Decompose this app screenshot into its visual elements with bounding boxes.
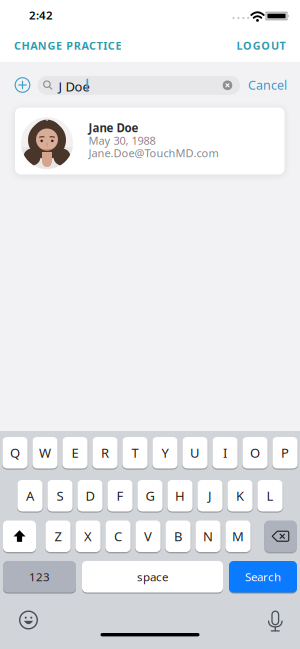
button[interactable]: CHANGE PRACTICE bbox=[14, 38, 121, 53]
button[interactable]: F bbox=[107, 480, 133, 511]
staticText: L bbox=[266, 487, 273, 505]
button[interactable]: G bbox=[137, 480, 163, 511]
staticText: D bbox=[85, 487, 94, 505]
staticText: R bbox=[101, 444, 109, 462]
button[interactable]: N bbox=[195, 520, 221, 552]
staticText: space bbox=[137, 569, 168, 585]
staticText: A bbox=[26, 487, 34, 505]
button[interactable]: Q bbox=[2, 437, 28, 468]
staticText: Cancel bbox=[248, 76, 287, 93]
staticText: N bbox=[203, 527, 213, 545]
staticText: O bbox=[250, 444, 260, 462]
button[interactable]: B bbox=[165, 520, 191, 552]
staticText: M bbox=[232, 527, 244, 545]
button[interactable] bbox=[19, 611, 37, 629]
button[interactable]: L bbox=[257, 480, 283, 511]
button[interactable] bbox=[264, 520, 296, 552]
staticText: Jane.Doe@TouchMD.com bbox=[88, 145, 218, 160]
button[interactable]: 123 bbox=[3, 561, 76, 592]
staticText: E bbox=[71, 444, 78, 462]
button[interactable]: A bbox=[17, 480, 43, 511]
button[interactable]: S bbox=[47, 480, 73, 511]
button[interactable]: space bbox=[82, 561, 223, 592]
staticText: Z bbox=[54, 527, 61, 545]
staticText: CHANGE PRACTICE bbox=[14, 38, 121, 53]
button[interactable]: I bbox=[212, 437, 238, 468]
button[interactable]: U bbox=[182, 437, 208, 468]
staticText: C bbox=[114, 527, 122, 545]
button[interactable]: H bbox=[167, 480, 193, 511]
button[interactable] bbox=[223, 80, 232, 90]
staticText: F bbox=[116, 487, 123, 505]
staticText: W bbox=[39, 444, 51, 462]
button[interactable]: C bbox=[105, 520, 131, 552]
staticText: May 30, 1988 bbox=[88, 133, 155, 148]
button[interactable]: Jane Doe bbox=[15, 107, 284, 174]
button[interactable] bbox=[266, 610, 285, 631]
staticText: T bbox=[131, 444, 138, 462]
button[interactable]: V bbox=[135, 520, 161, 552]
staticText: 2:42 bbox=[29, 7, 53, 23]
button[interactable]: J bbox=[197, 480, 223, 511]
button[interactable]: P bbox=[272, 437, 298, 468]
button[interactable]: Z bbox=[45, 520, 71, 552]
staticText: G bbox=[145, 487, 154, 505]
staticText: U bbox=[190, 444, 200, 462]
button[interactable]: M bbox=[225, 520, 251, 552]
button[interactable]: LOGOUT bbox=[236, 38, 285, 53]
button[interactable]: O bbox=[242, 437, 268, 468]
button[interactable]: Search bbox=[229, 561, 297, 592]
button[interactable]: D bbox=[77, 480, 103, 511]
staticText: H bbox=[175, 487, 185, 505]
button[interactable]: R bbox=[92, 437, 118, 468]
staticText: P bbox=[281, 444, 289, 462]
staticText: J bbox=[208, 487, 212, 505]
staticText: I bbox=[223, 444, 227, 462]
staticText: X bbox=[84, 527, 92, 545]
staticText: V bbox=[144, 527, 152, 545]
button[interactable] bbox=[13, 76, 31, 94]
staticText: LOGOUT bbox=[236, 38, 285, 53]
staticText: Jane Doe bbox=[88, 120, 138, 136]
button[interactable] bbox=[3, 520, 36, 552]
button[interactable]: K bbox=[227, 480, 253, 511]
staticText: S bbox=[56, 487, 63, 505]
staticText: B bbox=[174, 527, 182, 545]
button[interactable]: Cancel bbox=[248, 76, 287, 93]
staticText: 123 bbox=[29, 569, 50, 585]
staticText: Q bbox=[10, 444, 20, 462]
button[interactable]: X bbox=[75, 520, 101, 552]
button[interactable]: T bbox=[122, 437, 148, 468]
staticText: J Doe bbox=[58, 78, 89, 95]
button[interactable]: E bbox=[62, 437, 88, 468]
staticText: K bbox=[236, 487, 244, 505]
button[interactable]: W bbox=[32, 437, 58, 468]
staticText: Search bbox=[245, 569, 281, 585]
staticText: Y bbox=[161, 444, 168, 462]
button[interactable]: Y bbox=[152, 437, 178, 468]
